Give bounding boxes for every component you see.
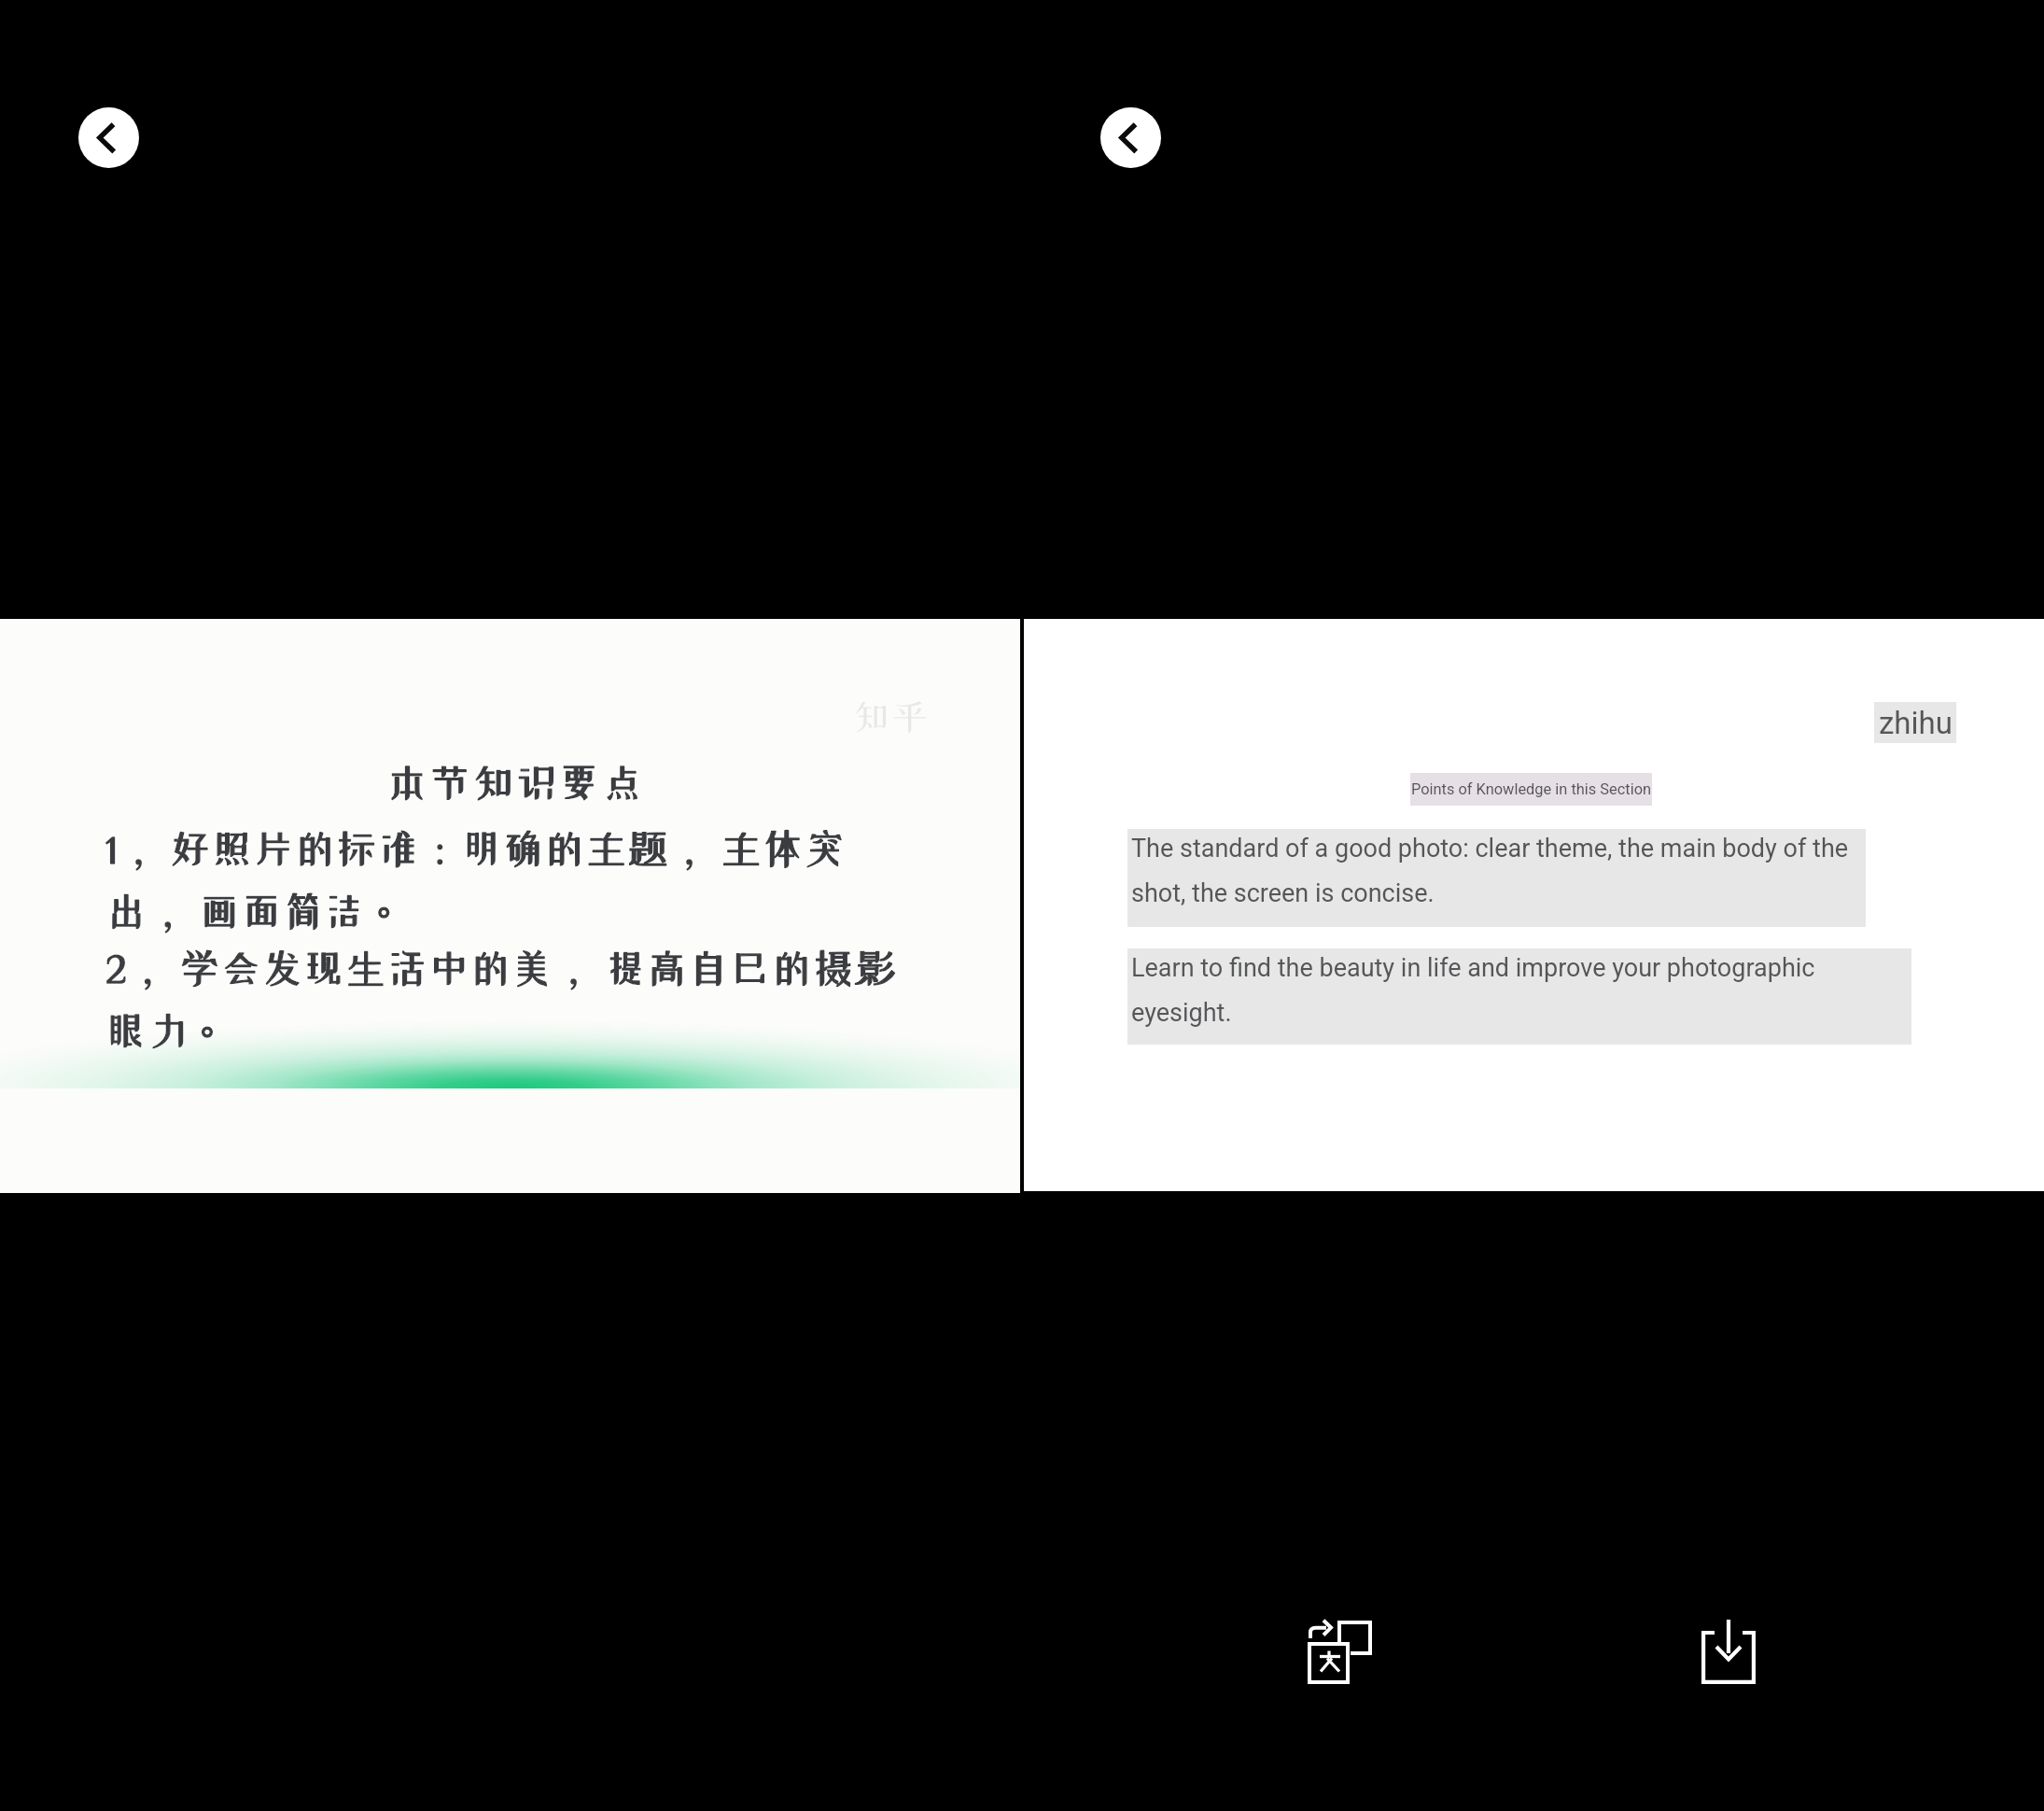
staticText: 1， 好照片的标准：明确的主题， 主体突	[105, 828, 846, 868]
button[interactable]: Translated image	[1024, 619, 2044, 1191]
staticText: 本节知识要点	[385, 761, 644, 803]
button[interactable]: Download	[1668, 1596, 1780, 1708]
staticText: 本节知识要点	[385, 761, 644, 803]
staticText: 出， 画面简洁。	[105, 888, 403, 937]
button[interactable]: Back	[1100, 107, 1161, 168]
button[interactable]: Translate	[1284, 1596, 1396, 1708]
staticText: The standard of a good photo: clear them…	[1131, 834, 1849, 908]
button[interactable]: Back	[78, 107, 139, 168]
staticText: Points of Knowledge in this Section	[1411, 780, 1652, 798]
staticText: Learn to find the beauty in life and imp…	[1131, 953, 1815, 1028]
staticText: zhihu	[1879, 705, 1953, 741]
staticText: 1， 好照片的标准：明确的主题， 主体突	[105, 828, 846, 868]
staticText: 2， 学会发现生活中的美， 提高自己的摄影	[105, 948, 896, 988]
staticText: 知乎	[851, 697, 930, 736]
button[interactable]: Original image	[0, 619, 1020, 1191]
staticText: 出， 画面简洁。	[105, 888, 403, 937]
staticText: 眼力。	[105, 1007, 227, 1057]
staticText: 眼力。	[105, 1007, 227, 1057]
staticText: 2， 学会发现生活中的美， 提高自己的摄影	[105, 948, 896, 988]
